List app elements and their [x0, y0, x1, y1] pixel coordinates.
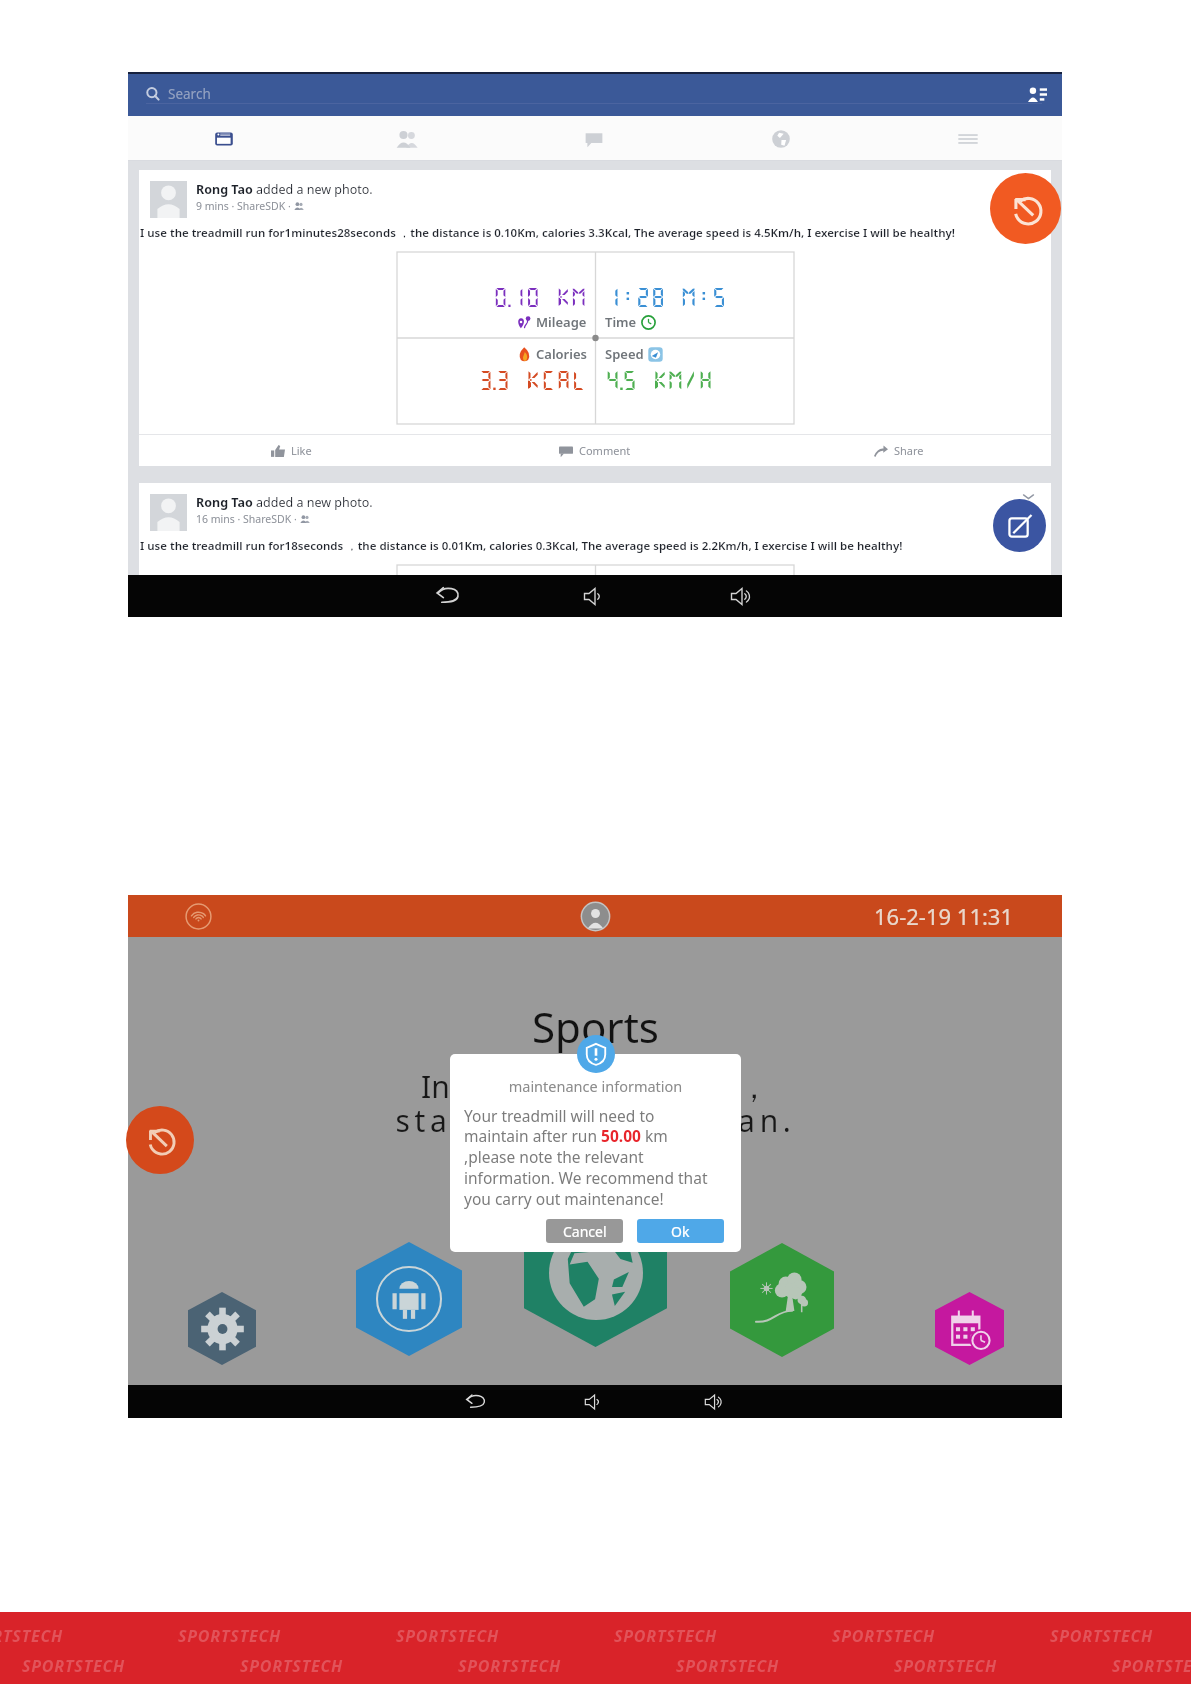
staticText: Search — [168, 85, 211, 103]
button[interactable]: Back — [458, 1385, 491, 1418]
staticText: I use the treadmill run for18seconds ，th… — [140, 538, 903, 554]
button[interactable]: Friend requests — [1020, 77, 1054, 111]
button[interactable]: History — [126, 1106, 194, 1174]
button[interactable]: News feed — [200, 116, 248, 161]
staticText: start your sport plan. — [395, 1100, 796, 1141]
staticText: Time — [605, 313, 637, 331]
staticText: I use the treadmill run for1minutes28sec… — [140, 225, 956, 241]
staticText: SPORTSTECH — [894, 1655, 998, 1677]
staticText: Mileage — [536, 313, 587, 331]
button[interactable]: Menu — [944, 116, 992, 161]
staticText: 9 mins · ShareSDK · — [196, 199, 294, 213]
button[interactable]: Compose post — [993, 499, 1046, 552]
button[interactable]: Profile — [578, 899, 612, 933]
button[interactable]: Wi-Fi — [183, 895, 213, 937]
staticText: SPORTSTECH — [0, 1625, 64, 1647]
staticText: Like — [291, 443, 312, 458]
staticText: 0.10 KM — [493, 284, 587, 309]
staticText: SPORTSTECH — [458, 1655, 562, 1677]
button[interactable]: Back — [426, 575, 468, 617]
staticText: Sports — [532, 998, 659, 1055]
staticText: 4.5 KM/H — [605, 367, 714, 392]
staticText: SPORTSTECH — [22, 1655, 126, 1677]
button[interactable]: Comment — [443, 435, 747, 466]
staticText: 3.3 KCAL — [478, 367, 587, 392]
staticText: 1:28 M:S — [605, 284, 727, 309]
staticText: International standard， — [421, 1066, 769, 1107]
button[interactable]: Share — [747, 435, 1051, 466]
staticText: 16-2-19 11:31 — [874, 901, 1014, 931]
button[interactable]: Nature — [730, 1243, 834, 1357]
button[interactable]: Messages — [570, 116, 618, 161]
staticText: 16 mins · ShareSDK · — [196, 512, 300, 526]
button[interactable]: Volume down — [578, 1385, 611, 1418]
button[interactable]: Schedule — [935, 1292, 1004, 1365]
button[interactable]: Cancel — [546, 1219, 623, 1243]
staticText: SPORTSTECH — [676, 1655, 780, 1677]
button[interactable]: Search — [128, 72, 1062, 116]
staticText: SPORTSTECH — [240, 1655, 344, 1677]
button[interactable]: More options — [1019, 487, 1037, 505]
button[interactable]: Like — [139, 435, 443, 466]
staticText: Ok — [671, 1222, 690, 1241]
staticText: Share — [894, 443, 924, 458]
staticText: SPORTSTECH — [178, 1625, 282, 1647]
staticText: SPORTSTECH — [832, 1625, 936, 1647]
staticText: Your treadmill will need to maintain aft… — [464, 1105, 708, 1210]
button[interactable]: Android — [356, 1242, 462, 1356]
button[interactable]: Friends — [383, 116, 431, 161]
staticText: Rong Tao added a new photo. — [196, 181, 373, 198]
button[interactable]: Volume up — [721, 575, 763, 617]
staticText: SPORTSTECH — [1112, 1655, 1191, 1677]
staticText: SPORTSTECH — [614, 1625, 718, 1647]
button[interactable]: Volume up — [698, 1385, 731, 1418]
button[interactable]: Notifications — [757, 116, 805, 161]
button[interactable]: Volume down — [574, 575, 616, 617]
staticText: maintenance information — [464, 1076, 727, 1096]
staticText: Speed — [605, 345, 644, 363]
button[interactable]: Settings — [188, 1292, 256, 1365]
button[interactable]: Ok — [637, 1219, 724, 1243]
staticText: Comment — [579, 443, 631, 458]
staticText: Cancel — [563, 1222, 607, 1241]
staticText: SPORTSTECH — [396, 1625, 500, 1647]
button[interactable]: World — [524, 1192, 667, 1347]
staticText: SPORTSTECH — [1050, 1625, 1154, 1647]
staticText: Rong Tao added a new photo. — [196, 494, 373, 511]
staticText: Calories — [536, 345, 587, 363]
button[interactable]: History — [990, 173, 1061, 244]
